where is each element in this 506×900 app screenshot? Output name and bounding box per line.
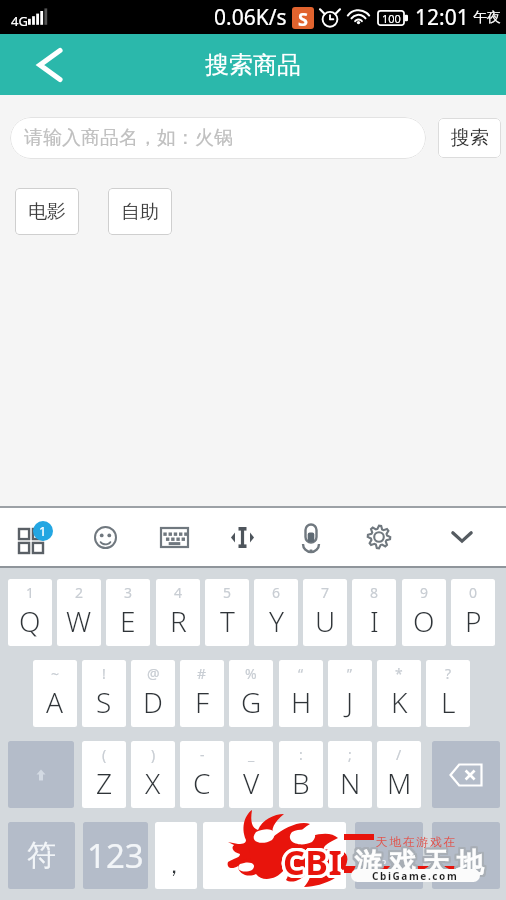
staticText: #	[197, 664, 207, 683]
button[interactable]: Comma	[155, 822, 197, 889]
button[interactable]: ”	[328, 660, 372, 727]
staticText: 游戏天地	[351, 845, 487, 879]
staticText: A	[46, 683, 64, 721]
button[interactable]: Emoji	[71, 507, 139, 567]
staticText: CBI	[283, 840, 343, 886]
button[interactable]: 5	[205, 579, 249, 646]
button[interactable]: Symbols	[8, 822, 75, 889]
staticText: CBI	[285, 838, 345, 884]
staticText: B	[292, 764, 310, 802]
staticText: CBI	[286, 840, 346, 886]
button[interactable]: -	[180, 741, 224, 808]
button[interactable]: Move cursor	[208, 507, 276, 567]
staticText: Q	[19, 602, 41, 640]
staticText: S	[298, 7, 308, 29]
staticText: CBI	[283, 837, 343, 883]
staticText: U	[315, 602, 336, 640]
staticText: 游戏天地	[353, 845, 489, 879]
staticText: 符	[27, 837, 56, 874]
staticText: K	[391, 683, 408, 721]
staticText: 8	[370, 583, 379, 602]
staticText: 搜索商品	[205, 50, 301, 80]
staticText: CBI	[285, 841, 345, 887]
staticText: 7	[321, 583, 330, 602]
button[interactable]: 自助	[108, 188, 172, 235]
button[interactable]: :	[279, 741, 323, 808]
staticText: 电影	[28, 200, 66, 224]
button[interactable]: 9	[402, 579, 446, 646]
staticText: CBI	[281, 840, 341, 886]
button[interactable]: 8	[352, 579, 396, 646]
button[interactable]: 搜索	[438, 118, 501, 158]
staticText: 游戏天地	[351, 848, 487, 882]
button[interactable]: 4	[156, 579, 200, 646]
staticText: 5	[223, 583, 232, 602]
staticText: CBI	[283, 839, 343, 885]
button[interactable]: _	[229, 741, 273, 808]
button[interactable]: ;	[328, 741, 372, 808]
staticText: ?	[445, 664, 452, 683]
button[interactable]: 0	[451, 579, 495, 646]
staticText: CBI	[281, 838, 341, 884]
button[interactable]: 电影	[15, 188, 79, 235]
staticText: 游戏天地	[352, 847, 488, 881]
button[interactable]: 7	[303, 579, 347, 646]
staticText: CBI	[284, 840, 344, 886]
button[interactable]: Hide keyboard	[428, 507, 496, 567]
staticText: CBI	[282, 839, 342, 885]
button[interactable]: Backspace	[432, 741, 500, 808]
staticText: (	[102, 745, 107, 764]
staticText: 100	[382, 11, 401, 26]
button[interactable]: !	[82, 660, 126, 727]
staticText: CBI	[286, 838, 346, 884]
staticText: “	[298, 664, 304, 683]
staticText: 9	[420, 583, 429, 602]
button[interactable]: Back	[0, 34, 78, 95]
button[interactable]: 请输入商品名，如：火锅	[10, 117, 426, 159]
staticText: 请输入商品名，如：火锅	[24, 126, 233, 150]
staticText: 12:01	[415, 3, 469, 32]
staticText: CbiGame.com	[372, 869, 459, 882]
button[interactable]: *	[377, 660, 421, 727]
button[interactable]: @	[131, 660, 175, 727]
button[interactable]: (	[82, 741, 126, 808]
staticText: CBI	[281, 837, 341, 883]
staticText: CBI	[285, 839, 345, 885]
button[interactable]: Keyboard layout	[140, 507, 208, 567]
button[interactable]: 3	[106, 579, 150, 646]
button[interactable]: Settings	[345, 507, 413, 567]
button[interactable]: Period	[355, 822, 423, 889]
staticText: M	[387, 764, 412, 802]
button[interactable]: 1	[8, 579, 52, 646]
staticText: D	[143, 683, 163, 721]
staticText: X	[145, 764, 161, 802]
staticText: T	[220, 602, 235, 640]
button[interactable]: Shift	[8, 741, 74, 808]
button[interactable]: 2	[57, 579, 101, 646]
button[interactable]: Numbers	[83, 822, 148, 889]
staticText: 6	[272, 583, 281, 602]
button[interactable]: %	[229, 660, 273, 727]
staticText: 游戏天地	[351, 846, 487, 880]
button[interactable]: 6	[254, 579, 298, 646]
button[interactable]: /	[377, 741, 421, 808]
button[interactable]: Symbols and apps	[2, 507, 70, 567]
button[interactable]: Space	[203, 822, 346, 889]
staticText: G	[241, 683, 262, 721]
staticText: CBI	[283, 838, 343, 884]
staticText: 游戏天地	[353, 848, 489, 882]
staticText: -	[200, 745, 205, 764]
button[interactable]: ~	[33, 660, 77, 727]
staticText: I	[370, 602, 379, 640]
button[interactable]: Enter	[432, 822, 500, 889]
staticText: S	[96, 683, 112, 721]
staticText: :	[299, 745, 303, 764]
button[interactable]: )	[131, 741, 175, 808]
staticText: CBI	[285, 840, 345, 886]
button[interactable]: #	[180, 660, 224, 727]
staticText: 123	[87, 833, 144, 878]
button[interactable]: Voice input	[277, 507, 345, 567]
staticText: 1	[39, 522, 47, 540]
button[interactable]: “	[279, 660, 323, 727]
button[interactable]: ?	[426, 660, 470, 727]
